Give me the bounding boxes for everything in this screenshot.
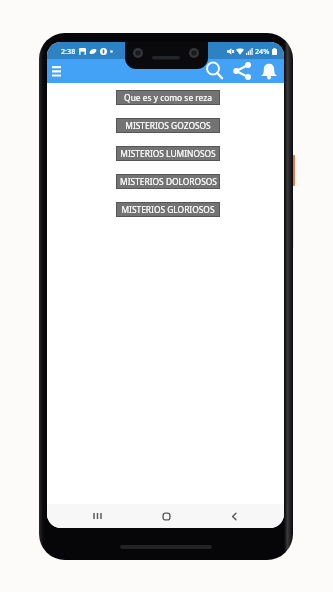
staticText: MISTERIOS LUMINOSOS: [120, 148, 216, 159]
staticText: MISTERIOS GLORIOSOS: [121, 204, 215, 215]
button[interactable]: MISTERIOS GLORIOSOS: [117, 203, 219, 216]
button[interactable]: MISTERIOS LUMINOSOS: [117, 147, 219, 160]
button[interactable]: Que es y como se reza: [117, 91, 219, 104]
staticText: 2:38: [61, 46, 76, 56]
button[interactable]: MISTERIOS GOZOSOS: [117, 119, 219, 132]
button[interactable]: Notifications: [258, 60, 280, 82]
button[interactable]: Search: [204, 60, 226, 82]
button[interactable]: MISTERIOS DOLOROSOS: [117, 175, 219, 188]
button[interactable]: Recents: [79, 504, 115, 528]
button[interactable]: Home: [148, 504, 184, 528]
button[interactable]: Share: [231, 60, 253, 82]
staticText: MISTERIOS GOZOSOS: [125, 120, 211, 131]
staticText: MISTERIOS DOLOROSOS: [120, 176, 217, 187]
button[interactable]: Back: [216, 504, 252, 528]
staticText: Que es y como se reza: [124, 92, 212, 103]
staticText: 24%: [255, 46, 270, 56]
button[interactable]: Menu: [48, 61, 64, 81]
